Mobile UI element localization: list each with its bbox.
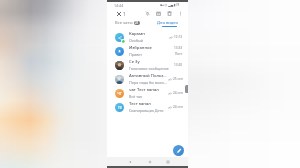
button[interactable]: Активный Пользов... <box>107 72 188 86</box>
staticText: Сканировщик Дето <box>129 108 164 113</box>
staticText: Всё так <box>129 94 142 99</box>
button[interactable]: Close selection <box>114 9 123 18</box>
staticText: 13:20 <box>174 63 183 67</box>
staticText: Пора сюда бы выехать <box>129 80 167 85</box>
button[interactable]: Back <box>126 158 134 166</box>
staticText: 21 <box>135 21 139 25</box>
button[interactable]: Карамн <box>107 30 188 44</box>
button[interactable]: Archive <box>154 9 163 18</box>
staticText: Избранное <box>129 45 152 51</box>
staticText: Особый <box>129 38 144 43</box>
staticText: Тест канал <box>129 101 151 107</box>
button[interactable]: More options <box>176 9 185 18</box>
button[interactable]: Recent apps <box>164 158 172 166</box>
staticText: Привет <box>129 52 143 57</box>
staticText: Для видео <box>157 20 178 26</box>
button[interactable]: Compose new message <box>173 145 184 156</box>
staticText: 1 <box>123 11 126 17</box>
staticText: ▪▴ ◎ ▂▄ ▮78 <box>160 3 180 7</box>
staticText: Активный Пользов... <box>129 73 167 79</box>
staticText: 25 сен <box>173 77 183 81</box>
button[interactable]: Все чаты <box>107 19 147 26</box>
staticText: 14:44 <box>114 3 124 8</box>
button[interactable]: ЧТ <box>107 86 188 100</box>
staticText: Пост <box>175 52 183 56</box>
staticText: ЧТ <box>117 91 122 96</box>
staticText: ТЕ <box>118 105 122 110</box>
button[interactable]: Mute <box>143 9 152 18</box>
button[interactable]: ТЕ <box>107 100 188 114</box>
button[interactable]: Для видео <box>147 19 188 26</box>
button[interactable]: Избранное <box>107 44 188 58</box>
staticText: чат Тест канал <box>129 87 159 93</box>
staticText: Карамн <box>129 31 145 37</box>
button[interactable]: Delete <box>165 9 174 18</box>
button[interactable]: Се Зу <box>107 58 188 72</box>
staticText: 24 сен <box>173 91 183 95</box>
button[interactable]: Home <box>146 158 154 166</box>
staticText: 13:33 <box>174 46 183 50</box>
staticText: 12:13 <box>174 35 183 39</box>
staticText: Все чаты <box>115 20 133 26</box>
staticText: 24 сен <box>173 105 183 109</box>
staticText: Голосовое сообщение <box>129 66 169 71</box>
staticText: Се Зу <box>129 59 140 65</box>
